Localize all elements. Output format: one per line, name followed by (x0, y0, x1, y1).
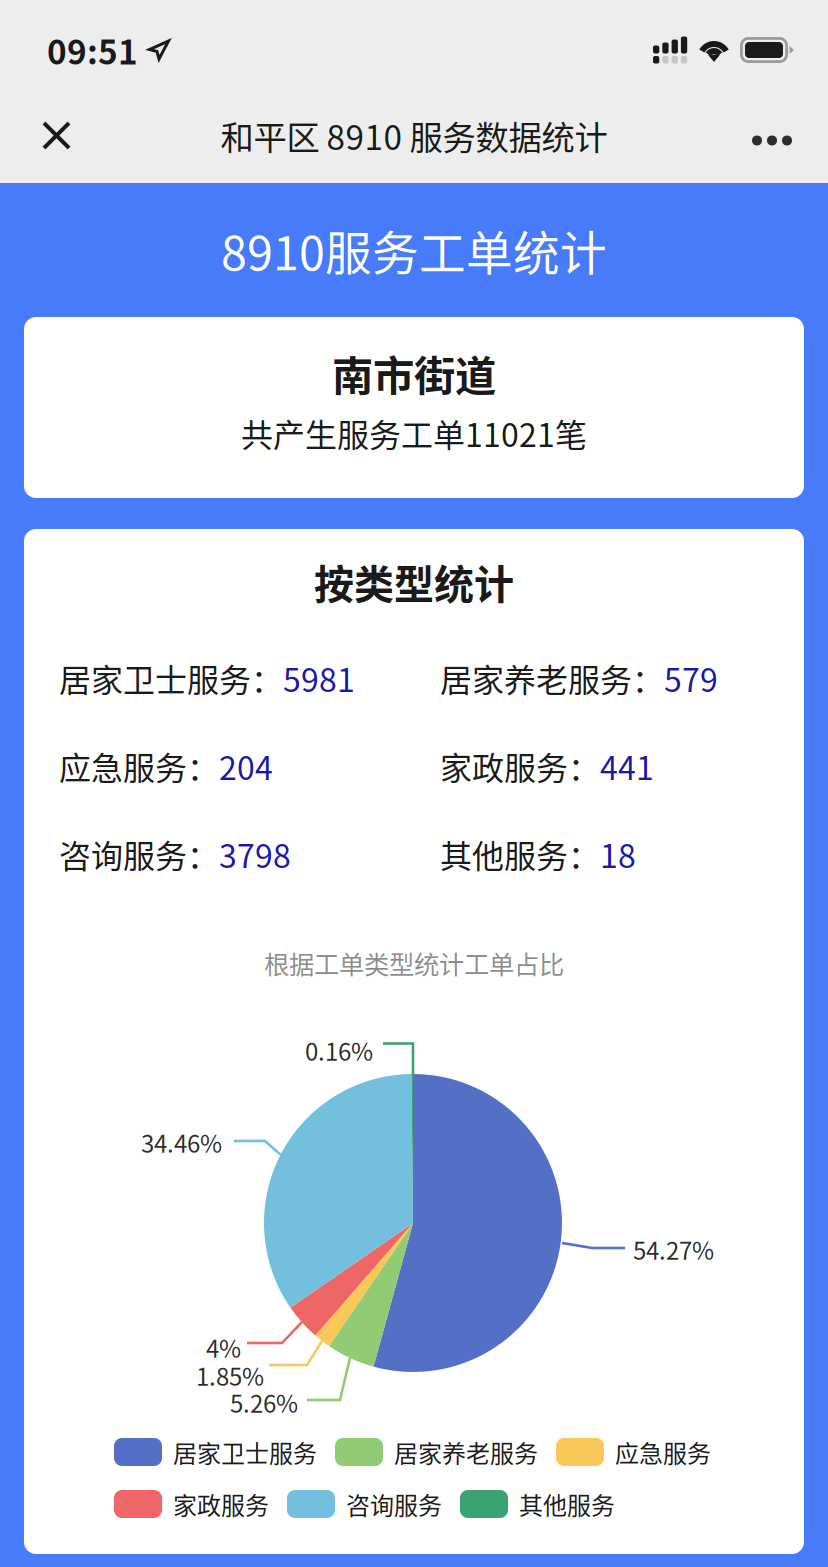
staticText: 根据工单类型统计工单占比 (264, 945, 564, 981)
staticText: 居家养老服务： (440, 655, 664, 701)
staticText: 居家卫士服务： (59, 655, 283, 701)
staticText: 南市街道 (332, 343, 496, 403)
staticText: 09:51 (47, 26, 138, 74)
button[interactable]: More (730, 108, 814, 162)
staticText: 咨询服务： (59, 831, 219, 877)
staticText: 应急服务 (615, 1435, 711, 1469)
staticText: 共产生服务工单11021笔 (241, 410, 587, 456)
staticText: 4% (206, 1330, 241, 1365)
staticText: 咨询服务 (346, 1487, 442, 1521)
staticText: 18 (600, 831, 636, 877)
staticText: 34.46% (141, 1125, 222, 1160)
staticText: 其他服务： (440, 831, 600, 877)
staticText: 家政服务 (173, 1487, 269, 1521)
staticText: 5981 (283, 655, 355, 701)
button[interactable]: Close (20, 99, 93, 172)
staticText: 441 (600, 743, 654, 789)
staticText: 204 (219, 743, 273, 789)
staticText: 居家卫士服务 (173, 1435, 317, 1469)
staticText: 1.85% (196, 1358, 264, 1393)
staticText: 0.16% (305, 1033, 373, 1068)
staticText: 按类型统计 (314, 552, 514, 610)
staticText: 应急服务： (59, 743, 219, 789)
staticText: 5.26% (230, 1385, 298, 1420)
staticText: 579 (664, 655, 718, 701)
staticText: 家政服务： (440, 743, 600, 789)
staticText: 和平区 8910 服务数据统计 (220, 111, 607, 160)
staticText: 居家养老服务 (394, 1435, 538, 1469)
staticText: 其他服务 (519, 1487, 615, 1521)
staticText: 3798 (219, 831, 291, 877)
staticText: 54.27% (633, 1232, 714, 1267)
staticText: 8910服务工单统计 (221, 216, 607, 284)
